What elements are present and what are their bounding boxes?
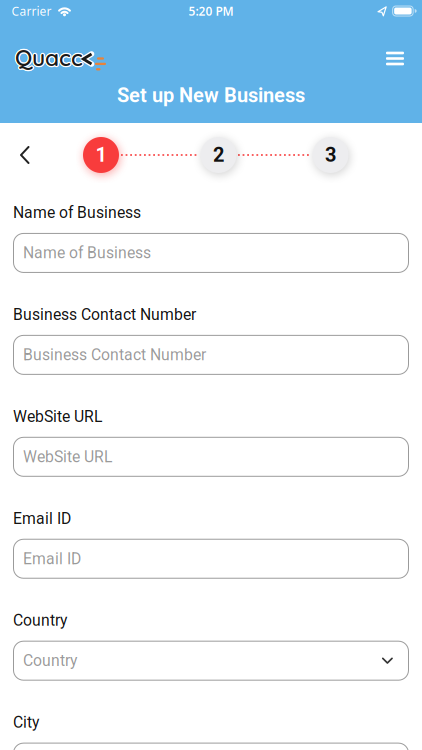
staticText: Quacc [14,44,82,73]
staticText: 1 [95,143,106,167]
staticText: WebSite URL [23,448,112,466]
staticText: Email ID [23,549,81,568]
staticText: Quacc [16,43,84,71]
staticText: Name of Business [13,203,141,222]
staticText: Business Contact Number [13,305,196,324]
button[interactable]: Menu [380,46,410,70]
staticText: Name of Business [23,244,151,262]
button[interactable]: Email ID [13,539,409,579]
staticText: 5:20 PM [188,3,233,19]
staticText: Quacc [15,43,83,72]
staticText: WebSite URL [13,407,102,426]
staticText: Quacc [16,44,84,72]
button[interactable]: Back [10,140,40,170]
staticText: Set up New Business [117,84,305,107]
staticText: Country [23,651,77,670]
staticText: Quacc [16,42,84,71]
staticText: City [13,713,39,732]
button[interactable]: Country [13,641,409,681]
button[interactable]: Name of Business [13,233,409,273]
button[interactable]: 2 [200,137,236,173]
staticText: 2 [213,143,224,167]
button[interactable]: City [13,743,409,750]
staticText: Quacc [15,44,83,73]
staticText: Quacc [14,44,82,72]
staticText: Quacc [14,43,82,71]
staticText: Quacc [16,44,84,73]
button[interactable]: WebSite URL [13,437,409,477]
staticText: 3 [325,143,336,167]
staticText: Country [13,611,67,630]
staticText: Email ID [13,509,71,528]
staticText: Quacc [15,42,83,70]
staticText: Quacc [14,42,82,71]
button[interactable]: 3 [312,137,348,173]
staticText: Quacc [14,43,82,72]
staticText: Carrier [11,3,51,19]
button[interactable]: Business Contact Number [13,335,409,375]
staticText: Business Contact Number [23,346,206,364]
staticText: Quacc [16,43,84,72]
button[interactable]: 1 [83,137,119,173]
